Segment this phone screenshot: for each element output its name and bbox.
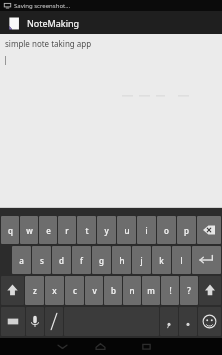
staticText: a bbox=[19, 255, 24, 266]
staticText: t bbox=[85, 225, 89, 236]
button[interactable]: simple note taking app bbox=[0, 34, 222, 208]
staticText: d bbox=[59, 255, 64, 266]
button[interactable]: x bbox=[45, 276, 64, 305]
staticText: k bbox=[159, 255, 164, 266]
button[interactable]: Enter bbox=[192, 246, 221, 274]
button[interactable]: ! bbox=[161, 276, 179, 305]
button[interactable]: j bbox=[132, 246, 151, 274]
staticText: h bbox=[119, 255, 125, 266]
button[interactable]: Recent apps bbox=[136, 338, 156, 355]
button[interactable]: l bbox=[172, 246, 191, 274]
button[interactable]: q bbox=[1, 216, 19, 244]
button[interactable]: Period bbox=[179, 307, 197, 336]
staticText: Saving screenshot... bbox=[14, 2, 71, 10]
staticText: c bbox=[73, 285, 77, 296]
button[interactable]: Slash bbox=[45, 307, 63, 336]
staticText: i bbox=[145, 225, 148, 236]
staticText: v bbox=[92, 285, 97, 296]
button[interactable]: Voice input bbox=[26, 307, 44, 336]
button[interactable]: w bbox=[20, 216, 38, 244]
staticText: e bbox=[46, 225, 51, 236]
button[interactable]: f bbox=[72, 246, 91, 274]
button[interactable]: h bbox=[112, 246, 131, 274]
button[interactable]: Home bbox=[90, 338, 110, 355]
staticText: l bbox=[180, 255, 183, 266]
button[interactable]: b bbox=[104, 276, 122, 305]
staticText: j bbox=[140, 255, 143, 266]
button[interactable]: e bbox=[39, 216, 57, 244]
button[interactable]: Shift bbox=[199, 276, 221, 305]
button[interactable]: Symbols bbox=[1, 307, 25, 336]
staticText: ! bbox=[169, 285, 172, 296]
button[interactable]: Comma bbox=[160, 307, 178, 336]
button[interactable]: Backspace bbox=[197, 216, 221, 244]
staticText: n bbox=[129, 285, 135, 296]
button[interactable]: y bbox=[97, 216, 116, 244]
button[interactable]: d bbox=[52, 246, 71, 274]
staticText: q bbox=[8, 225, 13, 236]
button[interactable]: p bbox=[177, 216, 196, 244]
staticText: z bbox=[33, 285, 37, 296]
staticText: b bbox=[111, 285, 116, 296]
staticText: simple note taking app bbox=[5, 38, 92, 49]
button[interactable]: Emoji bbox=[198, 307, 221, 336]
button[interactable]: c bbox=[65, 276, 84, 305]
button[interactable]: g bbox=[92, 246, 111, 274]
staticText: m bbox=[147, 285, 155, 296]
staticText: u bbox=[124, 225, 130, 236]
button[interactable]: k bbox=[152, 246, 171, 274]
button[interactable]: o bbox=[157, 216, 176, 244]
staticText: NoteMaking bbox=[27, 17, 80, 29]
staticText: o bbox=[164, 225, 169, 236]
staticText: ? bbox=[187, 285, 191, 296]
staticText: r bbox=[65, 225, 69, 236]
button[interactable]: v bbox=[85, 276, 103, 305]
button[interactable]: ? bbox=[180, 276, 198, 305]
staticText: y bbox=[104, 225, 109, 236]
button[interactable]: n bbox=[123, 276, 141, 305]
button[interactable]: Shift bbox=[1, 276, 24, 305]
button[interactable]: NoteMaking bbox=[0, 11, 222, 34]
button[interactable]: t bbox=[77, 216, 96, 244]
staticText: f bbox=[80, 255, 83, 266]
button[interactable]: a bbox=[12, 246, 31, 274]
button[interactable]: m bbox=[142, 276, 160, 305]
button[interactable]: z bbox=[25, 276, 44, 305]
staticText: g bbox=[99, 255, 104, 266]
button[interactable]: i bbox=[137, 216, 156, 244]
staticText: w bbox=[26, 225, 33, 236]
button[interactable]: r bbox=[58, 216, 76, 244]
button[interactable]: s bbox=[32, 246, 51, 274]
button[interactable]: Back bbox=[52, 338, 72, 355]
staticText: s bbox=[40, 255, 44, 266]
staticText: p bbox=[184, 225, 189, 236]
staticText: x bbox=[52, 285, 57, 296]
button[interactable]: u bbox=[117, 216, 136, 244]
